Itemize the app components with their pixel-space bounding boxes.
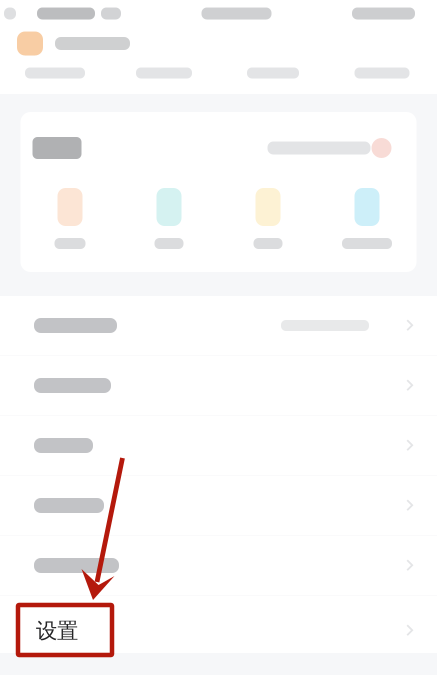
button[interactable]: Quick action [218,176,317,268]
button[interactable]: Setting row [0,416,437,476]
button[interactable]: Tab [327,60,436,86]
button[interactable]: Setting row [0,296,437,356]
button[interactable]: Tab [109,60,218,86]
button[interactable]: 设置 [0,596,437,653]
button[interactable]: Quick action [20,176,119,268]
staticText: 设置 [36,618,78,644]
button[interactable]: Tab [218,60,327,86]
button[interactable]: Quick action [119,176,218,268]
button[interactable]: Setting row [0,356,437,416]
button[interactable]: Tab [0,60,109,86]
button[interactable]: Setting row [0,476,437,536]
button[interactable]: Quick action [317,176,416,268]
button[interactable]: Setting row [0,536,437,596]
